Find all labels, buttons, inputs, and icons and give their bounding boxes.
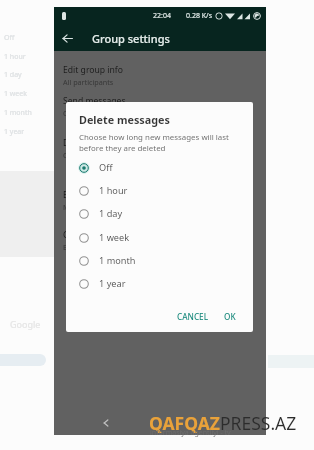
button[interactable]: OK — [219, 307, 241, 326]
staticText: Delete messages — [79, 112, 170, 127]
staticText: Send messages — [63, 95, 126, 107]
staticText: Off — [63, 150, 74, 160]
staticText: Group permissions — [63, 229, 140, 241]
button[interactable]: Off — [66, 156, 253, 179]
staticText: 0.28 K/s — [186, 11, 212, 21]
button[interactable]: CANCEL — [172, 307, 214, 326]
button[interactable]: Disappearing messages — [54, 134, 266, 163]
staticText: Only admins — [63, 108, 106, 118]
staticText: Messages are end-to-end encrypted — [63, 202, 185, 212]
staticText: Encryption — [63, 189, 107, 201]
staticText: 1 day — [4, 70, 22, 80]
staticText: Off — [99, 161, 113, 174]
button[interactable]: 1 day — [66, 202, 253, 225]
button[interactable]: Group permissions — [54, 226, 266, 255]
button[interactable]: Back — [54, 25, 80, 51]
staticText: Edit group info — [63, 64, 123, 76]
staticText: informasiya agentliyi - tv — [150, 428, 231, 438]
staticText: Choose how long new messages will last b… — [79, 132, 229, 153]
staticText: 1 hour — [99, 184, 128, 197]
staticText: Disappearing messages — [63, 137, 160, 149]
staticText: PRESS.AZ — [220, 411, 297, 435]
staticText: 1 week — [4, 89, 27, 99]
staticText: 1 hour — [4, 52, 26, 62]
staticText: 1 year — [99, 277, 126, 290]
button[interactable]: Edit group info — [54, 61, 266, 90]
staticText: QAFQAZ — [149, 411, 220, 435]
button[interactable]: 1 week — [66, 226, 253, 249]
staticText: Group settings — [92, 31, 170, 46]
staticText: 1 year — [4, 127, 25, 137]
button[interactable]: 1 hour — [66, 179, 253, 202]
button[interactable]: Send messages — [54, 92, 266, 121]
button[interactable]: 1 month — [66, 249, 253, 272]
staticText: Google — [10, 318, 41, 330]
staticText: CANCEL — [177, 311, 209, 322]
button[interactable]: Encryption — [54, 186, 266, 215]
staticText: 1 day — [99, 207, 123, 220]
staticText: 1 month — [99, 254, 136, 267]
staticText: Edit group info — [63, 242, 114, 252]
staticText: All participants — [63, 77, 114, 87]
button[interactable]: 1 year — [66, 272, 253, 295]
staticText: 1 week — [99, 231, 130, 244]
staticText: Off — [4, 33, 15, 43]
button[interactable]: Back — [98, 415, 114, 431]
staticText: OK — [224, 311, 236, 322]
staticText: 22:04 — [153, 11, 171, 21]
staticText: 1 month — [4, 108, 32, 118]
